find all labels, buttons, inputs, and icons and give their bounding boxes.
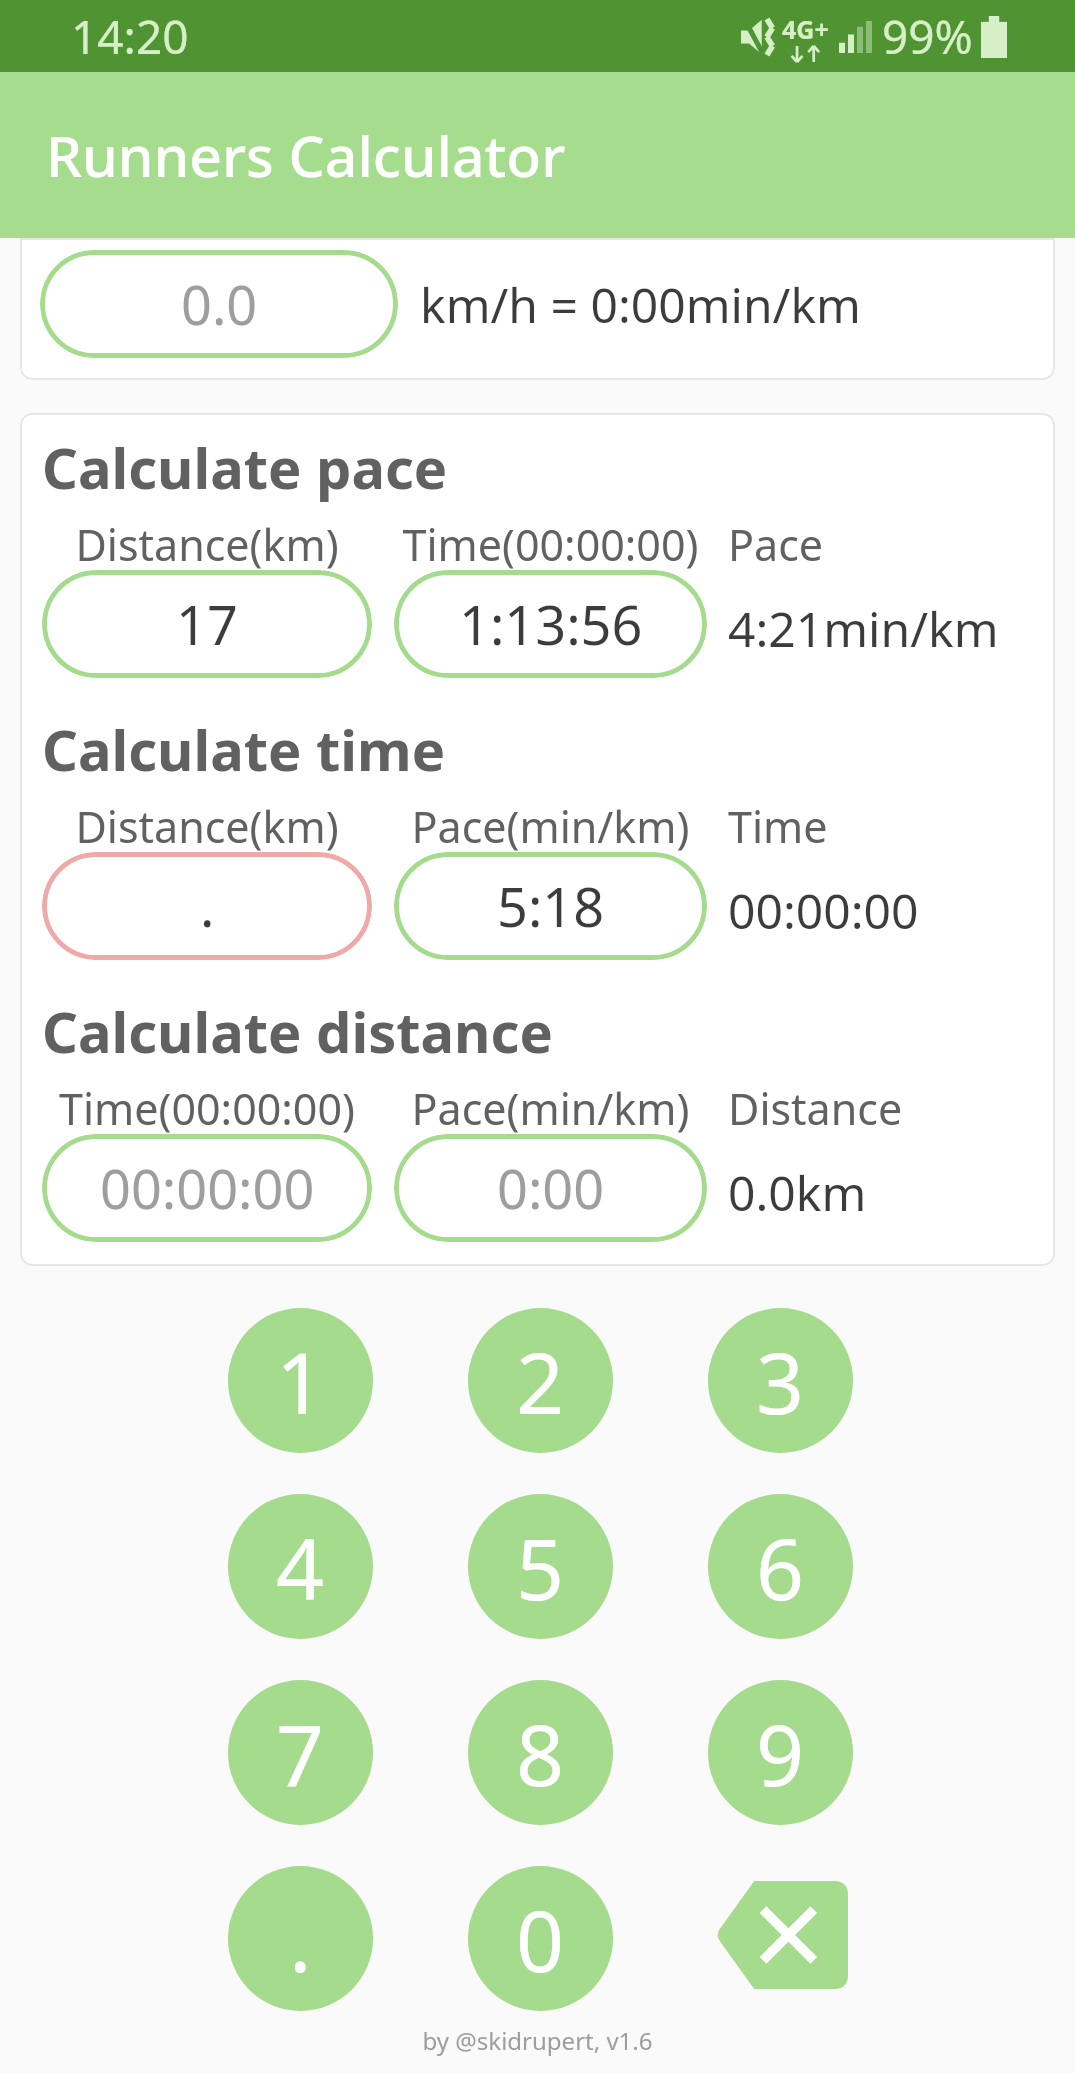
button[interactable]: 1 bbox=[228, 1308, 373, 1453]
staticText: 0.0 bbox=[181, 267, 258, 341]
staticText: 0:00 bbox=[497, 1151, 605, 1225]
staticText: 00:00:00 bbox=[728, 878, 919, 943]
button[interactable]: Backspace bbox=[708, 1866, 853, 2011]
staticText: 1:13:56 bbox=[459, 587, 643, 661]
button[interactable]: 0 bbox=[468, 1866, 613, 2011]
button[interactable]: 0.0 bbox=[40, 250, 398, 358]
staticText: . bbox=[200, 869, 215, 943]
button[interactable]: 7 bbox=[228, 1680, 373, 1825]
staticText: Distance(km) bbox=[42, 797, 372, 856]
button[interactable]: 2 bbox=[468, 1308, 613, 1453]
staticText: 14:20 bbox=[71, 5, 189, 68]
staticText: Distance(km) bbox=[42, 515, 372, 574]
button[interactable]: 1:13:56 bbox=[394, 570, 707, 678]
staticText: Calculate distance bbox=[42, 1008, 553, 1065]
staticText: Distance bbox=[728, 1079, 903, 1138]
button[interactable]: 00:00:00 bbox=[42, 1134, 372, 1242]
staticText: 4G+ bbox=[782, 12, 829, 46]
button[interactable]: . bbox=[228, 1866, 373, 2011]
staticText: Calculate pace bbox=[42, 444, 448, 501]
staticText: Pace bbox=[728, 515, 824, 574]
staticText: 2 bbox=[516, 1324, 565, 1438]
staticText: 6 bbox=[756, 1510, 805, 1624]
staticText: . bbox=[289, 1882, 312, 1996]
staticText: 4:21min/km bbox=[728, 596, 999, 661]
staticText: Time bbox=[728, 797, 828, 856]
staticText: Pace(min/km) bbox=[394, 1079, 707, 1138]
staticText: 1 bbox=[276, 1324, 325, 1438]
button[interactable]: 5:18 bbox=[394, 852, 707, 960]
staticText: 9 bbox=[756, 1696, 805, 1810]
button[interactable]: 9 bbox=[708, 1680, 853, 1825]
button[interactable]: 17 bbox=[42, 570, 372, 678]
staticText: Time(00:00:00) bbox=[42, 1079, 372, 1138]
button[interactable]: 0:00 bbox=[394, 1134, 707, 1242]
staticText: Time(00:00:00) bbox=[394, 515, 707, 574]
staticText: 17 bbox=[176, 587, 238, 661]
button[interactable]: 3 bbox=[708, 1308, 853, 1453]
staticText: 4 bbox=[276, 1510, 325, 1624]
staticText: by @skidrupert, v1.6 bbox=[0, 2024, 1075, 2057]
staticText: Calculate time bbox=[42, 726, 446, 783]
button[interactable]: 5 bbox=[468, 1494, 613, 1639]
staticText: 5:18 bbox=[497, 869, 605, 943]
staticText: 5 bbox=[516, 1510, 565, 1624]
staticText: 7 bbox=[276, 1696, 325, 1810]
staticText: Runners Calculator bbox=[46, 116, 566, 194]
staticText: Pace(min/km) bbox=[394, 797, 707, 856]
staticText: 8 bbox=[516, 1696, 565, 1810]
button[interactable]: 4 bbox=[228, 1494, 373, 1639]
staticText: 3 bbox=[756, 1324, 805, 1438]
staticText: 0.0km bbox=[728, 1160, 867, 1225]
staticText: 00:00:00 bbox=[100, 1151, 315, 1225]
staticText: 0 bbox=[516, 1882, 565, 1996]
button[interactable]: 6 bbox=[708, 1494, 853, 1639]
staticText: 99% bbox=[882, 5, 973, 68]
staticText: km/h = 0:00min/km bbox=[420, 272, 861, 337]
button[interactable]: 8 bbox=[468, 1680, 613, 1825]
button[interactable]: . bbox=[42, 852, 372, 960]
